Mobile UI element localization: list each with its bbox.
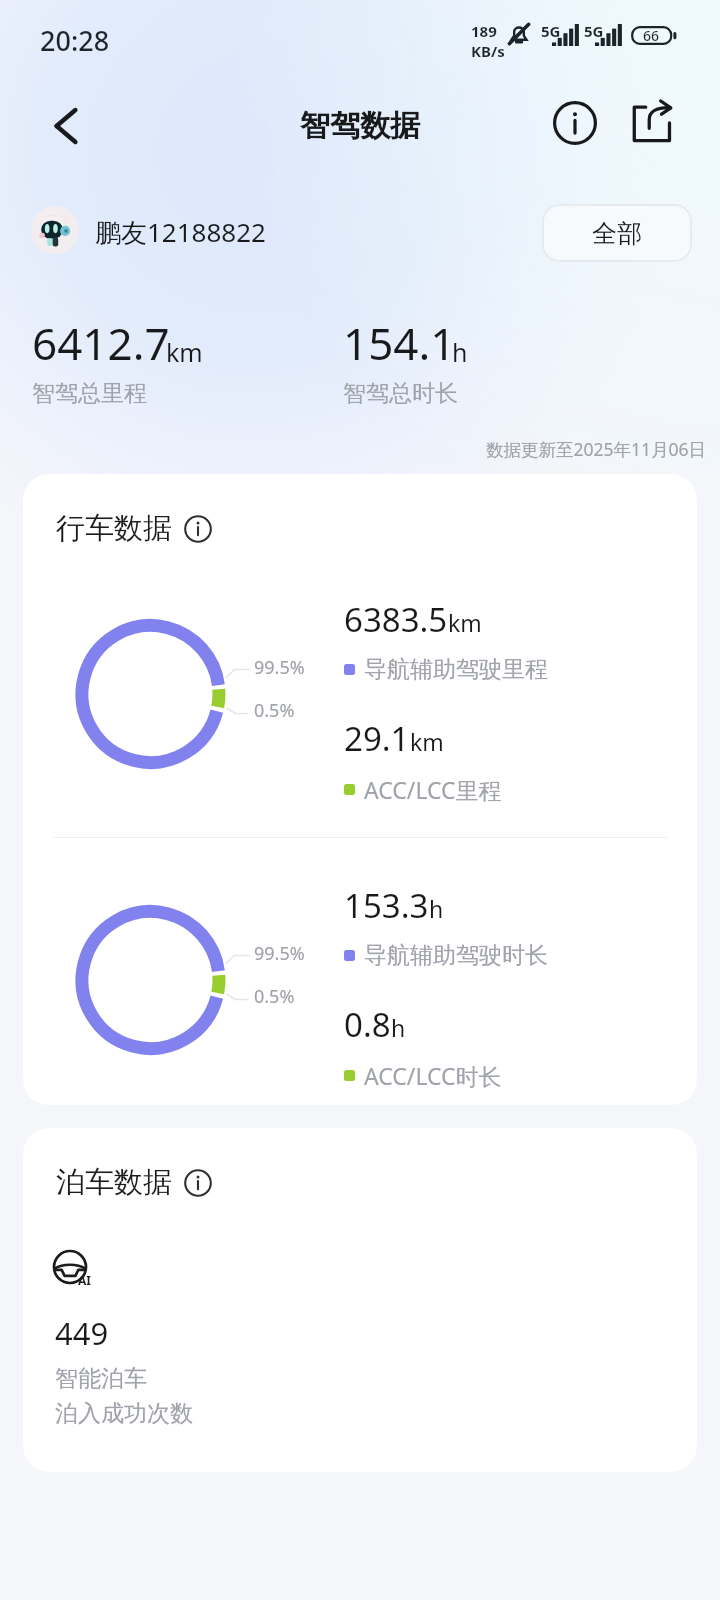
- button[interactable]: Info: [545, 93, 605, 153]
- staticText: 智驾总时长: [343, 379, 458, 408]
- staticText: km: [448, 607, 482, 638]
- staticText: 0.5%: [254, 984, 295, 1009]
- staticText: 189: [471, 21, 497, 41]
- staticText: 449: [55, 1312, 109, 1354]
- staticText: 0.5%: [254, 698, 295, 723]
- staticText: 智驾数据: [300, 107, 420, 145]
- staticText: KB/s: [471, 41, 505, 61]
- staticText: 29.1: [344, 716, 410, 761]
- staticText: km: [166, 335, 203, 369]
- button[interactable]: 泊车数据: [56, 1164, 212, 1201]
- staticText: 6412.7: [32, 313, 170, 373]
- staticText: h: [452, 335, 468, 369]
- staticText: 153.3: [344, 883, 429, 928]
- staticText: 智驾总里程: [32, 379, 147, 408]
- button[interactable]: Back: [37, 96, 97, 156]
- staticText: 鹏友12188822: [95, 214, 266, 250]
- button[interactable]: 行车数据: [56, 510, 212, 547]
- staticText: 行车数据: [56, 510, 172, 547]
- staticText: 5G: [584, 21, 604, 41]
- staticText: 154.1: [343, 313, 456, 373]
- staticText: 20:28: [40, 22, 110, 59]
- staticText: 66: [643, 26, 660, 45]
- staticText: 导航辅助驾驶时长: [364, 941, 548, 970]
- staticText: km: [410, 726, 444, 757]
- button[interactable]: 全部: [542, 204, 692, 262]
- staticText: 5G: [541, 21, 561, 41]
- staticText: 99.5%: [254, 655, 305, 680]
- staticText: 智能泊车: [55, 1364, 147, 1393]
- staticText: ACC/LCC时长: [364, 1060, 502, 1091]
- staticText: 99.5%: [254, 941, 305, 966]
- staticText: h: [429, 893, 444, 924]
- button[interactable]: Avatar: [31, 206, 79, 254]
- staticText: ACC/LCC里程: [364, 774, 502, 805]
- staticText: 泊入成功次数: [55, 1399, 193, 1428]
- button[interactable]: Share: [621, 93, 681, 153]
- staticText: 全部: [592, 218, 642, 249]
- staticText: 泊车数据: [56, 1164, 172, 1201]
- staticText: h: [391, 1012, 406, 1043]
- staticText: 导航辅助驾驶里程: [364, 655, 548, 684]
- staticText: 6383.5: [344, 597, 448, 642]
- staticText: AI: [78, 1272, 91, 1288]
- staticText: 0.8: [344, 1002, 391, 1047]
- staticText: 数据更新至2025年11月06日: [486, 437, 707, 461]
